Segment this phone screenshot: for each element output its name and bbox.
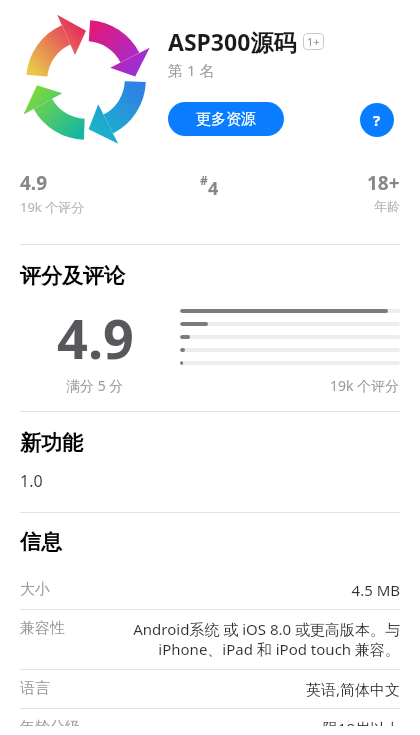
staticText: 4 — [208, 176, 219, 201]
staticText: ASP300源码 — [168, 26, 297, 57]
button[interactable]: 更多资源 — [168, 102, 284, 136]
staticText: 语言 — [20, 679, 50, 698]
staticText: 年龄分级 — [20, 718, 80, 726]
staticText: 1+ — [307, 34, 320, 49]
staticText: 英语,简体中文 — [305, 679, 400, 699]
staticText: 大小 — [20, 580, 50, 599]
button[interactable]: 年龄分级 — [20, 709, 400, 735]
staticText: # — [200, 172, 208, 188]
staticText: 更多资源 — [196, 110, 256, 129]
staticText: 评分及评论 — [20, 263, 125, 289]
staticText: 限18岁以上 — [322, 718, 400, 726]
button[interactable]: App icon — [18, 12, 154, 148]
staticText: 4.9 — [57, 301, 134, 375]
staticText: 4.5 MB — [351, 580, 400, 600]
staticText: 19k 个评分 — [20, 198, 85, 216]
staticText: Android系统 或 iOS 8.0 或更高版本。与 iPhone、iPad … — [120, 619, 400, 660]
button[interactable]: 兼容性 — [20, 610, 400, 670]
button[interactable]: Help — [360, 103, 394, 137]
staticText: 1.0 — [20, 470, 43, 492]
staticText: 18+ — [367, 170, 400, 196]
staticText: 年龄 — [374, 198, 400, 214]
staticText: 新功能 — [20, 430, 83, 456]
staticText: ? — [373, 110, 381, 130]
staticText: 兼容性 — [20, 619, 65, 638]
staticText: 4.9 — [20, 170, 48, 196]
button[interactable]: 大小 — [20, 571, 400, 610]
staticText: 信息 — [20, 529, 62, 555]
staticText: 第 1 名 — [168, 60, 215, 80]
staticText: 19k 个评分 — [330, 376, 400, 395]
button[interactable]: 语言 — [20, 670, 400, 709]
staticText: 满分 5 分 — [66, 376, 124, 395]
